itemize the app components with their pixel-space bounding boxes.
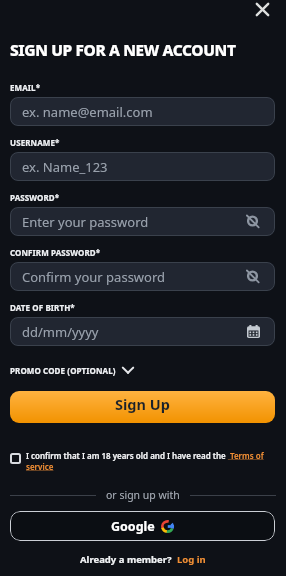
staticText: Confirm your password <box>22 268 166 286</box>
staticText: ex. Name_123 <box>22 158 108 176</box>
button[interactable]: PROMO CODE (OPTIONAL) <box>10 363 135 377</box>
staticText: DATE OF BIRTH* <box>10 302 75 313</box>
staticText: Sign Up <box>115 394 170 414</box>
button[interactable] <box>251 0 273 20</box>
button[interactable]: Google <box>10 511 275 541</box>
staticText: SIGN UP FOR A NEW ACCOUNT <box>10 39 236 60</box>
staticText: Already a member? <box>80 553 172 566</box>
staticText: PASSWORD* <box>10 192 60 203</box>
button[interactable]: Sign Up <box>10 391 275 423</box>
button[interactable]: Confirm your password <box>10 262 275 291</box>
staticText: PROMO CODE (OPTIONAL) <box>10 365 116 376</box>
staticText: ex. name@email.com <box>22 103 153 121</box>
staticText: I confirm that I am 18 years old and I h… <box>26 450 278 472</box>
staticText: dd/mm/yyyy <box>22 323 99 341</box>
staticText: USERNAME* <box>10 137 60 148</box>
button[interactable]: I confirm that I am 18 years old and I h… <box>10 450 278 472</box>
button[interactable]: Enter your password <box>10 207 275 236</box>
button[interactable]: dd/mm/yyyy <box>10 317 275 346</box>
staticText: Google <box>111 518 155 535</box>
staticText: EMAIL* <box>10 82 41 93</box>
button[interactable]: Already a member? <box>0 553 286 566</box>
button[interactable]: ex. name@email.com <box>10 97 275 126</box>
staticText: or sign up with <box>106 488 180 502</box>
staticText: Enter your password <box>22 213 149 231</box>
staticText: CONFIRM PASSWORD* <box>10 247 101 258</box>
staticText: Log in <box>177 553 206 566</box>
button[interactable]: ex. Name_123 <box>10 152 275 181</box>
